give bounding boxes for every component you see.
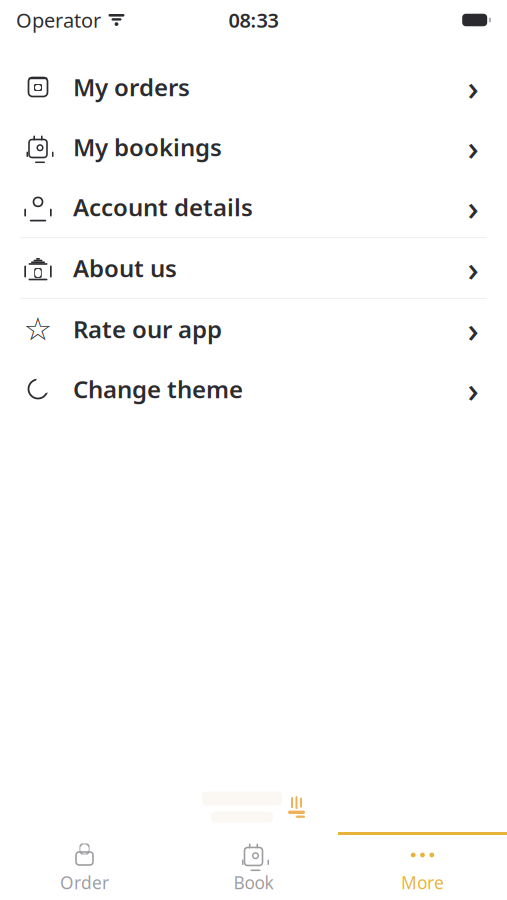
staticText: ☆ bbox=[23, 311, 52, 347]
button[interactable]: Book bbox=[169, 834, 338, 900]
staticText: › bbox=[467, 64, 478, 110]
staticText: › bbox=[467, 245, 478, 291]
button[interactable]: Order bbox=[0, 834, 169, 900]
staticText: Account details bbox=[73, 191, 253, 223]
staticText: Change theme bbox=[73, 373, 243, 405]
staticText: My orders bbox=[73, 71, 190, 103]
staticText: Order bbox=[60, 871, 109, 894]
button[interactable]: My orders bbox=[0, 57, 507, 117]
button[interactable]: Account details bbox=[0, 177, 507, 237]
staticText: › bbox=[467, 366, 478, 412]
staticText: › bbox=[467, 124, 478, 170]
staticText: More bbox=[401, 871, 444, 894]
staticText: › bbox=[467, 184, 478, 230]
button[interactable]: My bookings bbox=[0, 117, 507, 177]
staticText: Book bbox=[233, 871, 273, 894]
button[interactable]: More bbox=[338, 834, 507, 900]
button[interactable]: ☆ bbox=[0, 299, 507, 359]
button[interactable]: Change theme bbox=[0, 359, 507, 419]
staticText: Rate our app bbox=[73, 313, 222, 345]
staticText: › bbox=[467, 306, 478, 352]
staticText: Operator bbox=[16, 7, 101, 33]
staticText: 08:33 bbox=[228, 7, 278, 33]
staticText: About us bbox=[73, 252, 177, 284]
button[interactable]: About us bbox=[0, 238, 507, 298]
staticText: My bookings bbox=[73, 131, 222, 163]
